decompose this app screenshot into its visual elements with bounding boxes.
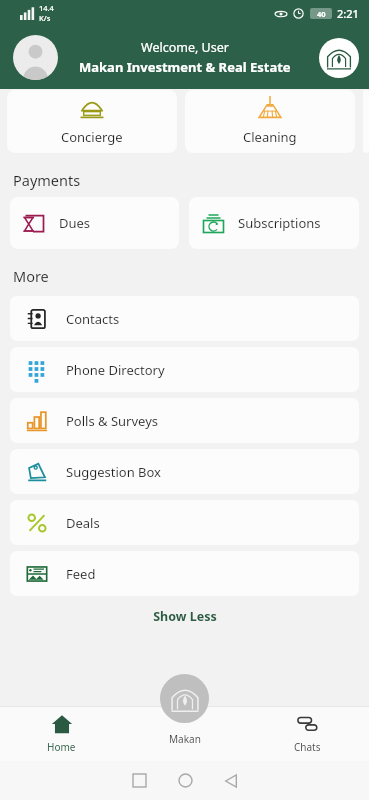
button[interactable]: Show Less: [0, 608, 369, 625]
other: Makan: [160, 674, 209, 723]
staticText: Suggestion Box: [66, 463, 161, 481]
button[interactable]: Profile: [13, 35, 58, 80]
staticText: Contacts: [66, 310, 120, 328]
staticText: Home: [47, 740, 76, 754]
staticText: 14.4: [39, 3, 54, 13]
button[interactable]: Chats: [246, 706, 369, 761]
button[interactable]: Makan logo: [319, 38, 359, 78]
staticText: Show Less: [153, 608, 217, 625]
staticText: Phone Directory: [66, 361, 165, 379]
button[interactable]: Back: [208, 761, 254, 800]
staticText: Cleaning: [243, 128, 297, 146]
staticText: Subscriptions: [238, 214, 321, 232]
staticText: Concierge: [61, 128, 123, 146]
button[interactable]: Dues: [10, 197, 179, 249]
button[interactable]: Home: [0, 706, 123, 761]
button[interactable]: Polls & Surveys: [10, 398, 359, 443]
button[interactable]: Phone Directory: [10, 347, 359, 392]
staticText: Polls & Surveys: [66, 412, 159, 430]
staticText: Makan Investment & Real Estate: [79, 58, 291, 76]
button[interactable]: Feed: [10, 551, 359, 596]
button[interactable]: Deals: [10, 500, 359, 545]
staticText: Feed: [66, 565, 96, 583]
button[interactable]: Contacts: [10, 296, 359, 341]
staticText: Chats: [294, 740, 321, 754]
button[interactable]: Suggestion Box: [10, 449, 359, 494]
staticText: K/s: [39, 13, 51, 23]
staticText: Welcome, User: [141, 39, 229, 56]
staticText: Makan: [169, 732, 201, 746]
staticText: Deals: [66, 514, 100, 532]
button[interactable]: Recents: [116, 761, 162, 800]
button[interactable]: Makan: [160, 674, 209, 746]
staticText: 40: [317, 9, 326, 19]
staticText: Dues: [59, 214, 91, 232]
button[interactable]: Home: [162, 761, 208, 800]
staticText: More: [13, 266, 49, 286]
button[interactable]: Subscriptions: [189, 197, 359, 249]
button[interactable]: Cleaning: [185, 90, 355, 153]
button[interactable]: Concierge: [7, 90, 177, 153]
staticText: Payments: [13, 170, 81, 190]
staticText: 2:21: [337, 6, 359, 21]
